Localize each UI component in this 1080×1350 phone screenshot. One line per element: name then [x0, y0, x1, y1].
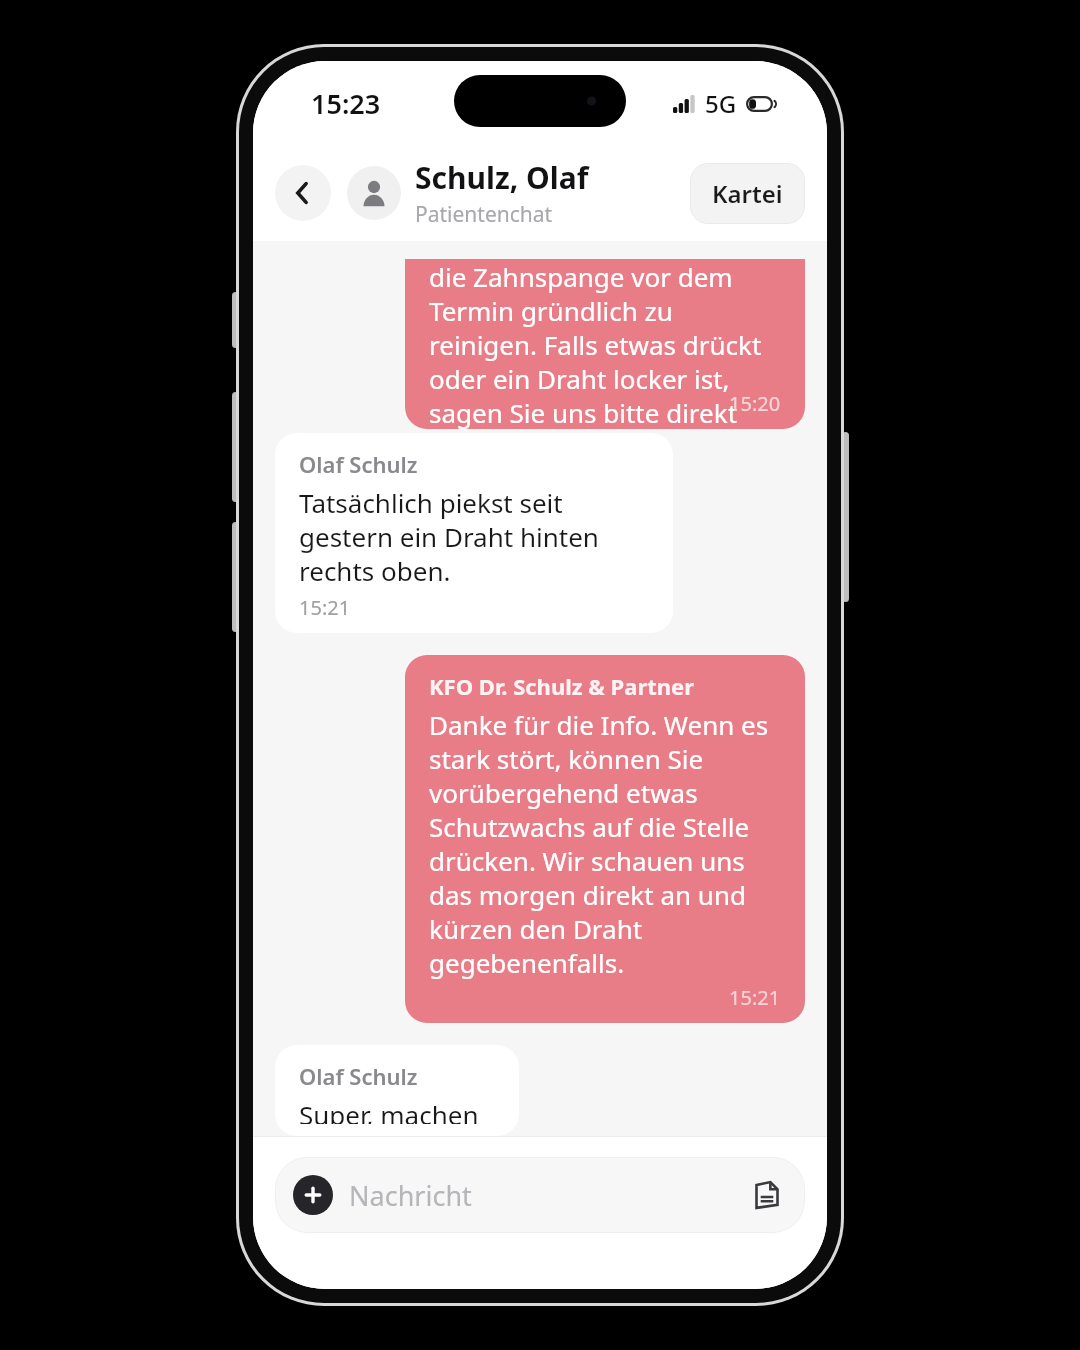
staticText: Danke für die Info. Wenn es stark stört,… [429, 707, 781, 980]
staticText: 15:21 [299, 594, 351, 621]
staticText: Kartei [712, 177, 783, 210]
button[interactable]: Dokument anhängen [747, 1175, 787, 1215]
staticText: Nachricht [349, 1177, 747, 1214]
staticText: 15:23 [311, 85, 381, 122]
staticText: die Zahnspange vor dem Termin gründlich … [429, 259, 781, 429]
staticText: Patientenchat [415, 200, 553, 229]
button[interactable]: Olaf Schulz [275, 1045, 519, 1136]
staticText: KFO Dr. Schulz & Partner [429, 671, 695, 701]
staticText: Olaf Schulz [299, 1061, 418, 1091]
staticText: Schulz, Olaf [415, 157, 589, 198]
button[interactable]: Olaf Schulz [275, 433, 673, 633]
button[interactable]: Kartei [690, 163, 805, 224]
button[interactable]: Patientenprofil [347, 166, 401, 220]
staticText: Olaf Schulz [299, 449, 418, 479]
button[interactable]: Zurück [275, 165, 331, 221]
button[interactable]: KFO Dr. Schulz & Partner [405, 655, 805, 1023]
staticText: Super, machen wir. [299, 1097, 495, 1124]
staticText: 5G [705, 87, 737, 120]
staticText: Tatsächlich piekst seit gestern ein Drah… [299, 485, 649, 588]
button[interactable]: Anhang hinzufügen [293, 1175, 333, 1215]
button[interactable]: Anhang hinzufügen [275, 1157, 805, 1233]
button[interactable]: die Zahnspange vor dem Termin gründlich … [405, 259, 805, 429]
staticText: 15:20 [729, 390, 781, 417]
staticText: 15:21 [729, 984, 781, 1011]
